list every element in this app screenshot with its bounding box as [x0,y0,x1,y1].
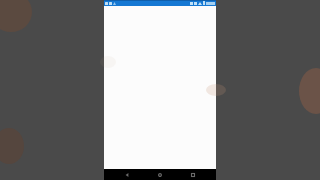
button[interactable]: Back [117,169,137,180]
button[interactable]: Recent apps [183,169,203,180]
button[interactable]: Home [150,169,170,180]
